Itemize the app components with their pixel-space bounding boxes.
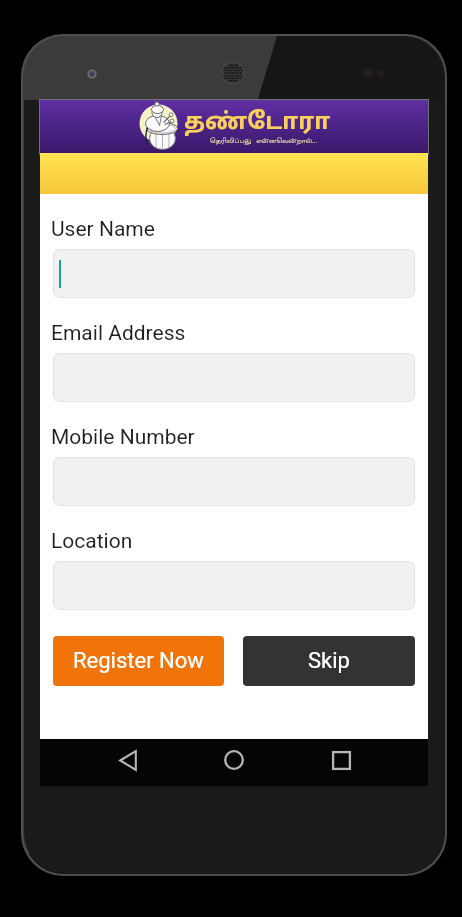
staticText: Mobile Number: [51, 425, 195, 450]
staticText: Email Address: [51, 321, 186, 346]
button[interactable]: Recent apps: [323, 742, 359, 778]
staticText: தண்டோரா: [184, 109, 331, 138]
staticText: Location: [51, 529, 133, 554]
staticText: Skip: [308, 648, 350, 674]
button[interactable]: Back: [110, 742, 146, 778]
button[interactable]: Skip: [243, 636, 415, 686]
button[interactable]: Home: [216, 742, 252, 778]
staticText: தெரிவிப்பது என்னவென்றால்...: [210, 138, 318, 146]
staticText: User Name: [51, 217, 155, 242]
button[interactable]: [53, 249, 415, 298]
button[interactable]: Register Now: [53, 636, 224, 686]
staticText: Register Now: [73, 648, 204, 674]
